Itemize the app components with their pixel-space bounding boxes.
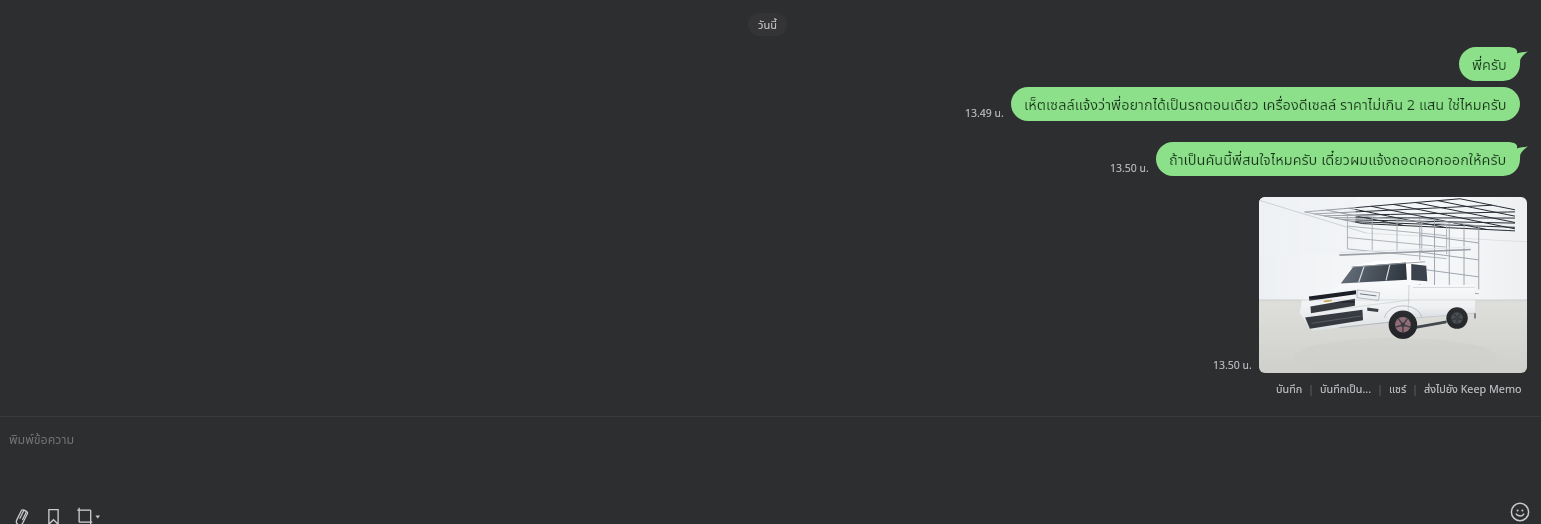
staticText: เห็ตเซลล์แจ้งว่าพี่อยากได้เป็นรถตอนเดียว… — [1024, 94, 1507, 114]
staticText: | — [1412, 381, 1419, 396]
staticText: | — [1377, 381, 1384, 396]
button[interactable]: วันนี้ — [748, 13, 787, 36]
button[interactable]: Photo — [1259, 197, 1527, 373]
button[interactable]: Attach file — [12, 505, 33, 524]
button[interactable]: ถ้าเป็นคันนี้พี่สนใจไหมครับ เดี๋ยวผมแจ้ง… — [1156, 142, 1528, 176]
button[interactable]: บันทึก — [1276, 381, 1303, 396]
button[interactable]: พิมพ์ข้อความ — [9, 431, 75, 448]
staticText: 13.50 น. — [1110, 161, 1149, 175]
button[interactable]: Crop — [74, 505, 95, 524]
staticText: พี่ครับ — [1472, 54, 1507, 74]
staticText: ถ้าเป็นคันนี้พี่สนใจไหมครับ เดี๋ยวผมแจ้ง… — [1169, 149, 1507, 169]
button[interactable]: เห็ตเซลล์แจ้งว่าพี่อยากได้เป็นรถตอนเดียว… — [1011, 87, 1520, 121]
button[interactable]: แชร์ — [1389, 381, 1407, 396]
button[interactable]: ส่งไปยัง Keep Memo — [1424, 381, 1522, 396]
staticText: วันนี้ — [758, 17, 777, 32]
staticText: 13.49 น. — [965, 106, 1004, 120]
staticText: 13.50 น. — [1213, 358, 1252, 372]
button[interactable]: Emoji — [1508, 500, 1532, 524]
button[interactable]: บันทึกเป็น... — [1320, 381, 1372, 396]
button[interactable]: พี่ครับ — [1459, 47, 1528, 81]
staticText: | — [1308, 381, 1315, 396]
button[interactable]: Bookmark — [43, 505, 64, 524]
